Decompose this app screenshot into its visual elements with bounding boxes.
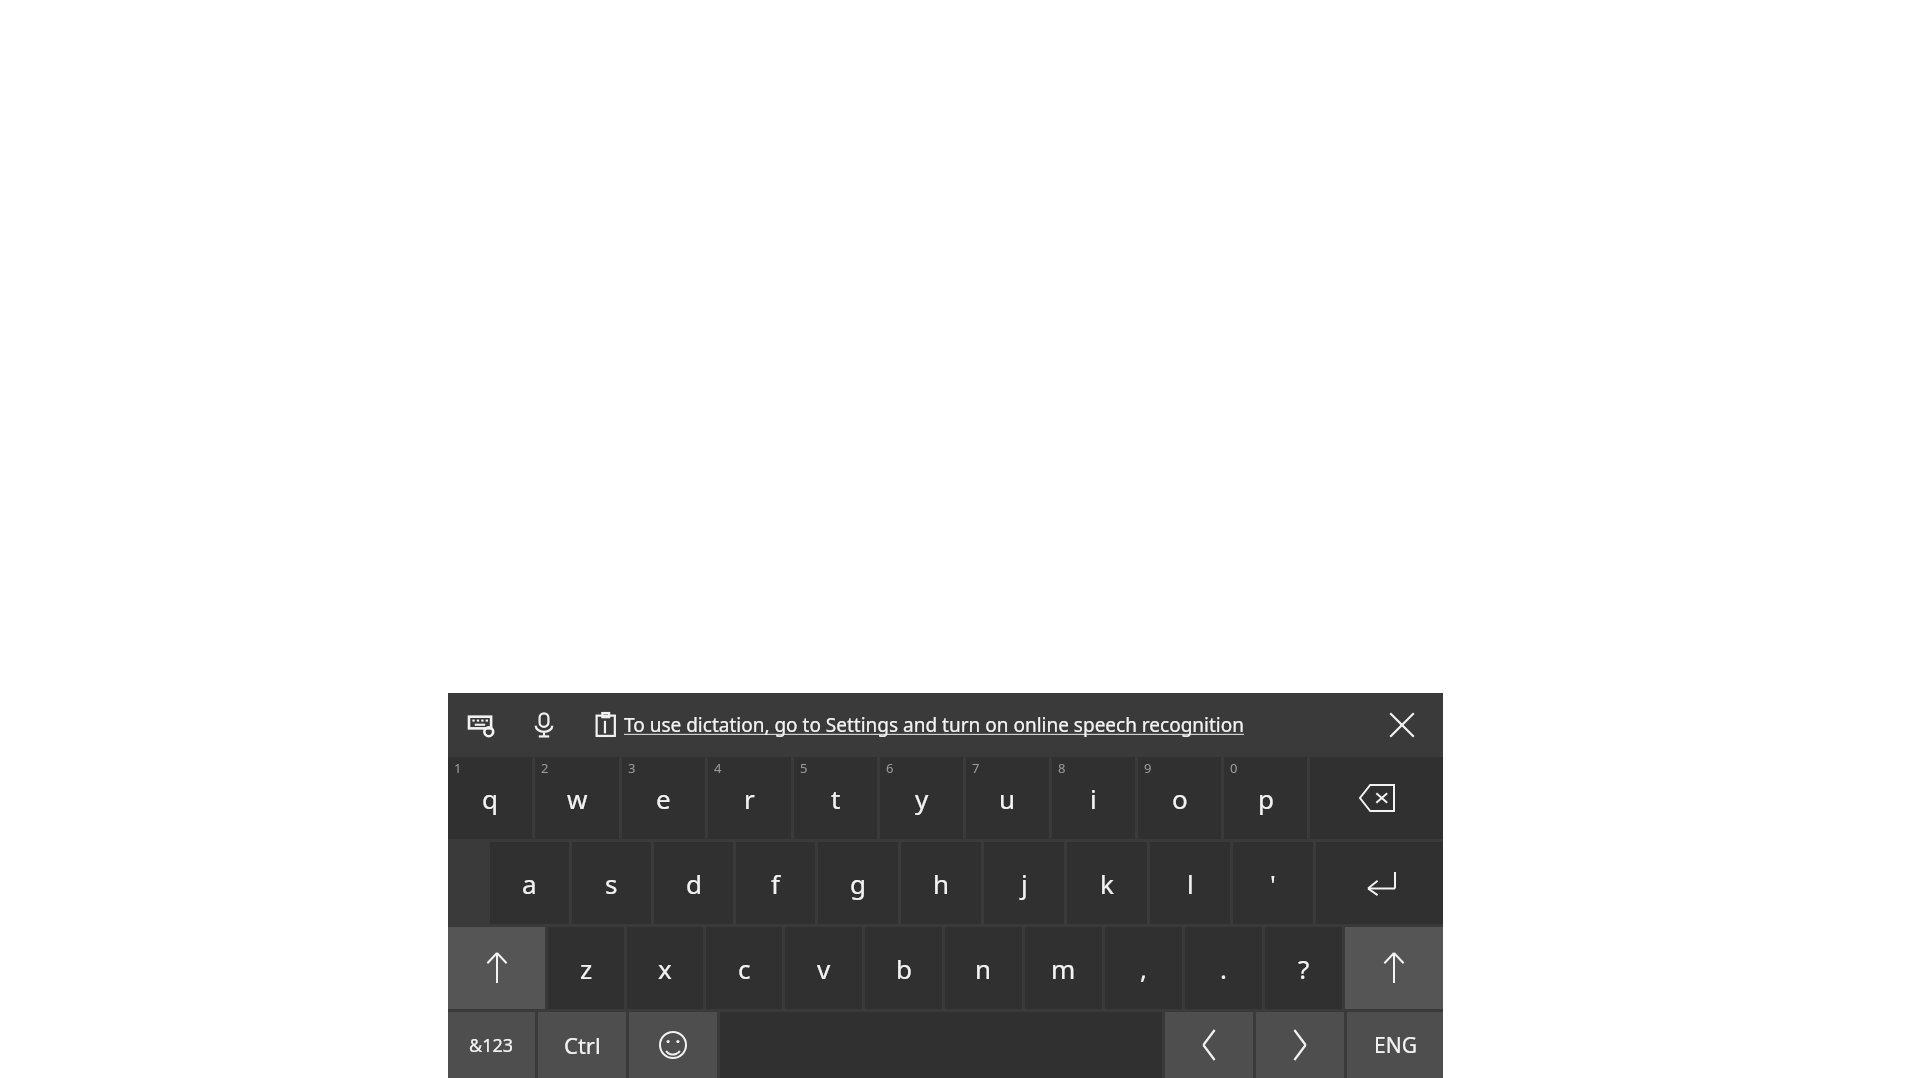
staticText: y [915, 781, 929, 816]
button[interactable]: k [1067, 842, 1147, 924]
staticText: d [686, 866, 702, 901]
staticText: u [999, 781, 1016, 816]
button[interactable]: 1 [448, 757, 532, 839]
staticText: x [658, 951, 672, 986]
staticText: 6 [886, 759, 894, 777]
staticText: g [850, 866, 866, 901]
staticText: h [933, 866, 950, 901]
staticText: f [771, 866, 780, 901]
staticText: a [522, 866, 537, 901]
button[interactable]: 5 [794, 757, 877, 839]
button[interactable]: 4 [708, 757, 791, 839]
button[interactable]: 0 [1224, 757, 1307, 839]
button[interactable]: Ctrl [538, 1012, 626, 1078]
button[interactable]: . [1185, 927, 1262, 1009]
button[interactable]: Move cursor right [1256, 1012, 1344, 1078]
staticText: n [975, 951, 992, 986]
button[interactable]: j [984, 842, 1064, 924]
button[interactable]: v [785, 927, 862, 1009]
button[interactable]: Move cursor left [1165, 1012, 1253, 1078]
staticText: o [1172, 781, 1188, 816]
staticText: 7 [972, 759, 980, 777]
button[interactable]: h [901, 842, 981, 924]
staticText: q [482, 781, 498, 816]
staticText: j [1021, 866, 1028, 901]
button[interactable]: g [818, 842, 898, 924]
staticText: &123 [469, 1033, 514, 1058]
button[interactable]: x [627, 927, 703, 1009]
button[interactable]: Enter [1316, 842, 1443, 924]
staticText: , [1140, 951, 1147, 986]
staticText: r [744, 781, 755, 816]
button[interactable]: n [945, 927, 1022, 1009]
button[interactable]: 8 [1052, 757, 1135, 839]
button[interactable]: a [490, 842, 569, 924]
button[interactable]: Shift [448, 927, 545, 1009]
button[interactable]: Close [1379, 702, 1425, 748]
staticText: c [738, 951, 751, 986]
staticText: w [567, 781, 588, 816]
button[interactable]: 2 [535, 757, 619, 839]
button[interactable]: 3 [622, 757, 705, 839]
button[interactable]: To use dictation, go to Settings and tur… [624, 712, 1244, 738]
button[interactable]: Shift [1345, 927, 1443, 1009]
staticText: 8 [1058, 759, 1066, 777]
button[interactable]: s [572, 842, 651, 924]
button[interactable]: d [654, 842, 733, 924]
button[interactable]: &123 [448, 1012, 535, 1078]
staticText: s [605, 866, 618, 901]
button[interactable]: z [548, 927, 624, 1009]
staticText: k [1100, 866, 1114, 901]
staticText: t [831, 781, 841, 816]
staticText: 0 [1230, 759, 1238, 777]
button[interactable]: 6 [880, 757, 963, 839]
staticText: 2 [541, 759, 549, 777]
button[interactable]: 9 [1138, 757, 1221, 839]
staticText: b [896, 951, 912, 986]
button[interactable]: ENG [1347, 1012, 1443, 1078]
staticText: 1 [454, 759, 462, 777]
button[interactable]: ' [1233, 842, 1313, 924]
button[interactable]: , [1105, 927, 1182, 1009]
button[interactable]: 7 [966, 757, 1049, 839]
staticText: z [580, 951, 593, 986]
staticText: m [1051, 951, 1076, 986]
staticText: To use dictation, go to Settings and tur… [624, 712, 1244, 738]
button[interactable]: Clipboard [586, 705, 626, 745]
button[interactable]: Backspace [1310, 757, 1443, 839]
staticText: l [1187, 866, 1194, 901]
staticText: 4 [714, 759, 722, 777]
staticText: 3 [628, 759, 636, 777]
button[interactable]: b [865, 927, 942, 1009]
button[interactable]: f [736, 842, 815, 924]
staticText: e [656, 781, 671, 816]
button[interactable]: Keyboard settings [462, 705, 502, 745]
staticText: ' [1270, 866, 1276, 901]
staticText: . [1220, 951, 1227, 986]
staticText: 5 [800, 759, 808, 777]
staticText: p [1258, 781, 1274, 816]
staticText: ENG [1374, 1031, 1417, 1060]
button[interactable]: m [1025, 927, 1102, 1009]
button[interactable]: Emoji [629, 1012, 717, 1078]
staticText: ? [1298, 951, 1310, 986]
staticText: Ctrl [564, 1030, 601, 1060]
button[interactable]: l [1150, 842, 1230, 924]
staticText: v [817, 951, 831, 986]
button[interactable]: c [706, 927, 782, 1009]
button[interactable]: ? [1265, 927, 1342, 1009]
staticText: i [1090, 781, 1097, 816]
button[interactable]: Dictation microphone [524, 705, 564, 745]
staticText: 9 [1144, 759, 1152, 777]
